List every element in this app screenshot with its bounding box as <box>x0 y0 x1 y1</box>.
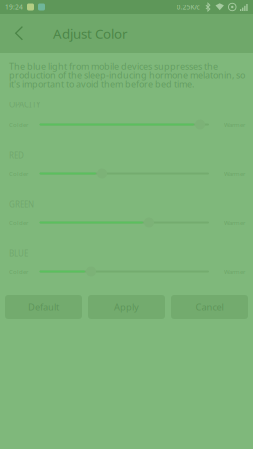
staticText: Warmer <box>224 169 245 178</box>
button[interactable]: Back <box>0 14 39 53</box>
staticText: Cancel <box>195 301 223 313</box>
staticText: Warmer <box>224 218 245 227</box>
staticText: The blue light from mobile devices suppr… <box>9 60 245 90</box>
staticText: BLUE <box>9 248 28 259</box>
staticText: Colder <box>9 218 28 227</box>
staticText: Warmer <box>224 267 245 276</box>
staticText: 0.25K/c <box>176 2 199 12</box>
staticText: Warmer <box>224 120 245 129</box>
staticText: Default <box>28 301 59 313</box>
button[interactable]: Default <box>5 295 82 319</box>
staticText: 19:24 <box>5 2 23 12</box>
staticText: Colder <box>9 267 28 276</box>
staticText: Colder <box>9 120 28 129</box>
staticText: RED <box>9 150 24 161</box>
staticText: OPACITY <box>9 99 41 110</box>
staticText: Colder <box>9 169 28 178</box>
staticText: GREEN <box>9 199 34 210</box>
staticText: Apply <box>114 301 139 313</box>
staticText: Adjust Color <box>53 24 128 43</box>
